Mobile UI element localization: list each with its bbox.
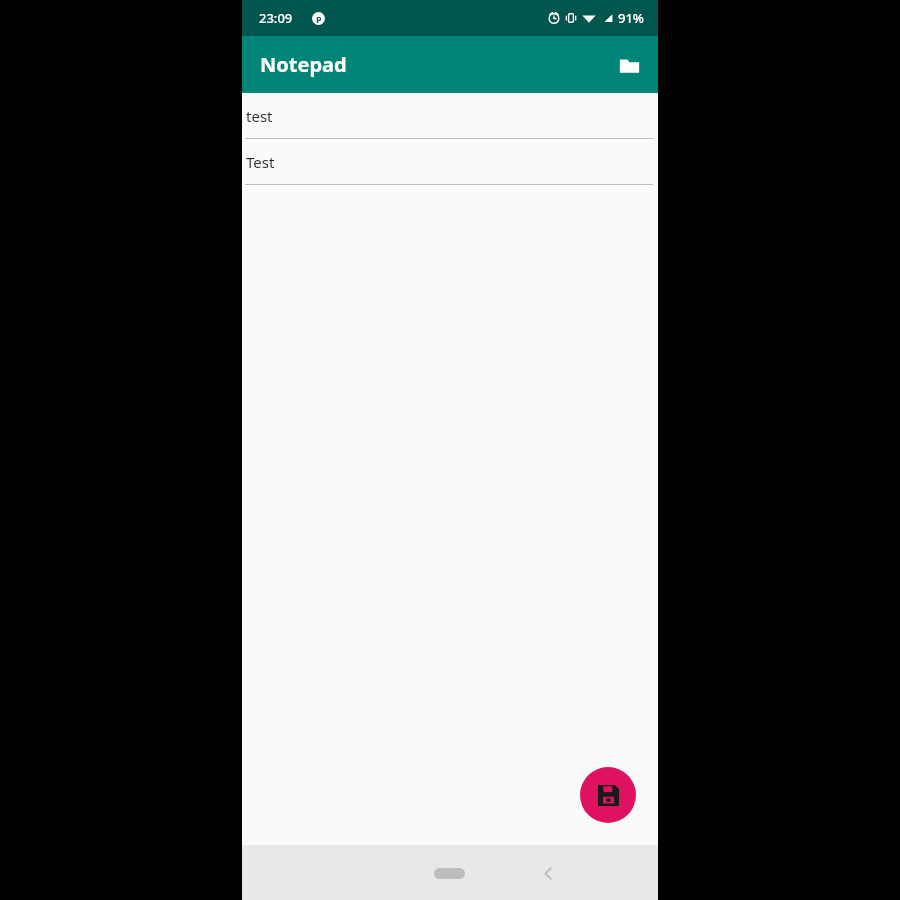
button[interactable]: test [242,93,658,139]
button[interactable]: Home [423,856,475,890]
staticText: Notepad [260,51,347,78]
staticText: Test [246,152,275,172]
staticText: 91% [618,9,644,27]
button[interactable]: Back [530,855,566,891]
staticText: 23:09 [259,9,293,27]
staticText: P [316,13,322,25]
button[interactable]: Open folder [606,42,652,88]
button[interactable]: Test [242,139,658,185]
staticText: test [246,106,273,126]
button[interactable]: Save note [580,767,636,823]
